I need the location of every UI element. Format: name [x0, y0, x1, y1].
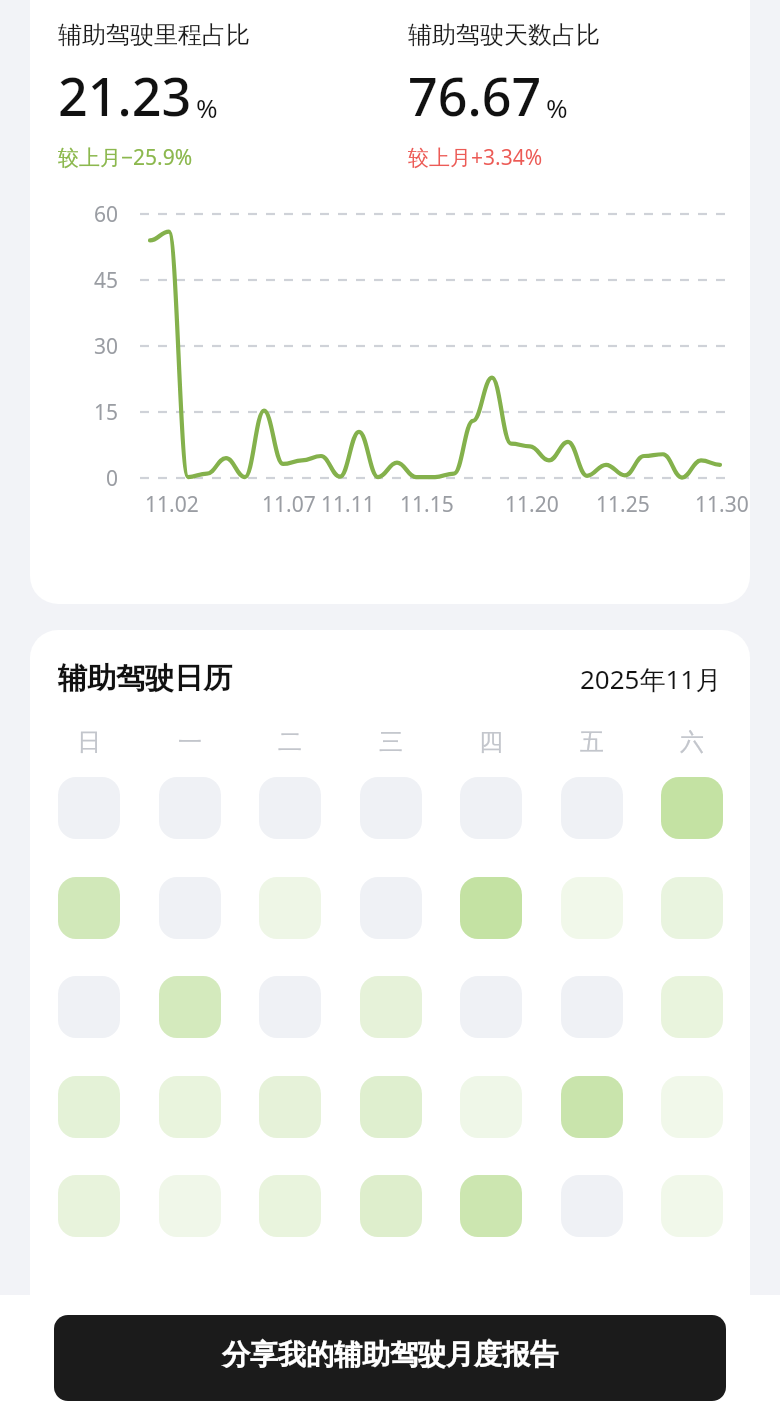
- staticText: 76.67: [408, 60, 542, 131]
- button[interactable]: [159, 1076, 221, 1138]
- button[interactable]: [460, 1175, 522, 1237]
- button[interactable]: [159, 777, 221, 839]
- button[interactable]: [661, 777, 723, 839]
- button[interactable]: [460, 777, 522, 839]
- staticText: 11.02: [145, 490, 199, 519]
- staticText: 21.23: [58, 60, 192, 131]
- staticText: 11.30: [695, 490, 749, 519]
- staticText: 60: [93, 200, 118, 229]
- staticText: 0: [105, 464, 118, 493]
- staticText: 11.20: [505, 490, 559, 519]
- button[interactable]: [259, 877, 321, 939]
- button[interactable]: [460, 1076, 522, 1138]
- button[interactable]: [360, 976, 422, 1038]
- button[interactable]: [661, 877, 723, 939]
- button[interactable]: [159, 976, 221, 1038]
- button[interactable]: [661, 976, 723, 1038]
- button[interactable]: [360, 877, 422, 939]
- button[interactable]: [460, 877, 522, 939]
- button[interactable]: [58, 1076, 120, 1138]
- button[interactable]: [360, 1175, 422, 1237]
- staticText: 二: [278, 727, 302, 757]
- staticText: 五: [580, 727, 604, 757]
- staticText: 2025年11月: [580, 661, 722, 697]
- button[interactable]: [259, 976, 321, 1038]
- staticText: 11.25: [596, 490, 650, 519]
- button[interactable]: [259, 777, 321, 839]
- button[interactable]: [58, 777, 120, 839]
- staticText: 11.11: [321, 490, 375, 519]
- staticText: 一: [178, 727, 202, 757]
- staticText: 11.15: [400, 490, 454, 519]
- button[interactable]: [561, 877, 623, 939]
- button[interactable]: [259, 1175, 321, 1237]
- staticText: 15: [93, 398, 118, 427]
- button[interactable]: [58, 1175, 120, 1237]
- staticText: 分享我的辅助驾驶月度报告: [222, 1337, 558, 1372]
- button[interactable]: [159, 1175, 221, 1237]
- staticText: 日: [77, 727, 101, 757]
- button[interactable]: [360, 1076, 422, 1138]
- button[interactable]: [259, 1076, 321, 1138]
- staticText: 六: [680, 727, 704, 757]
- button[interactable]: [360, 777, 422, 839]
- button[interactable]: [561, 1175, 623, 1237]
- staticText: 较上月+3.34%: [408, 143, 543, 172]
- staticText: 三: [379, 727, 403, 757]
- button[interactable]: [561, 777, 623, 839]
- staticText: 辅助驾驶里程占比: [58, 20, 250, 50]
- staticText: 较上月−25.9%: [58, 143, 193, 172]
- staticText: %: [196, 90, 218, 125]
- button[interactable]: [561, 1076, 623, 1138]
- button[interactable]: [460, 976, 522, 1038]
- button[interactable]: [561, 976, 623, 1038]
- button[interactable]: [661, 1076, 723, 1138]
- staticText: 辅助驾驶天数占比: [408, 20, 600, 50]
- staticText: 辅助驾驶日历: [58, 660, 232, 697]
- button[interactable]: [58, 877, 120, 939]
- staticText: 30: [93, 332, 118, 361]
- staticText: %: [546, 90, 568, 125]
- staticText: 45: [93, 266, 118, 295]
- button[interactable]: [58, 976, 120, 1038]
- staticText: 11.07: [262, 490, 316, 519]
- staticText: 四: [479, 727, 503, 757]
- button[interactable]: [661, 1175, 723, 1237]
- button[interactable]: 分享我的辅助驾驶月度报告: [54, 1315, 726, 1401]
- button[interactable]: [159, 877, 221, 939]
